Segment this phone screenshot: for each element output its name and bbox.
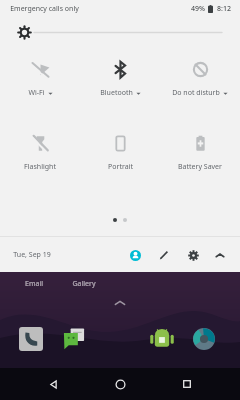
staticText: 49%	[191, 4, 205, 14]
button[interactable]: Phone	[19, 327, 43, 351]
button[interactable]: Collapse	[211, 246, 229, 264]
staticText: Flashlight	[24, 162, 56, 172]
button[interactable]: Do not disturb	[160, 60, 240, 98]
button[interactable]: Flashlight	[0, 134, 80, 172]
staticText: Battery Saver	[178, 162, 222, 172]
button[interactable]: Back	[39, 370, 67, 398]
button[interactable]: Battery Saver	[160, 134, 240, 172]
button[interactable]: Wi-Fi	[0, 60, 80, 98]
button[interactable]: Bluetooth	[80, 60, 160, 98]
button[interactable]: Play Store	[150, 327, 174, 351]
staticText: Wi-Fi	[28, 88, 45, 98]
staticText: Emergency calls only	[10, 4, 79, 14]
button[interactable]: Recents	[173, 370, 201, 398]
button[interactable]: Portrait	[80, 134, 160, 172]
staticText: 8:12	[217, 4, 231, 14]
button[interactable]: User	[126, 246, 144, 264]
staticText: Do not disturb	[172, 88, 220, 98]
staticText: Gallery	[72, 279, 96, 289]
button[interactable]: Home	[106, 370, 134, 398]
button[interactable]: Camera	[192, 327, 216, 351]
staticText: Tue, Sep 19	[13, 250, 51, 260]
button[interactable]: Edit	[155, 246, 173, 264]
button[interactable]: Messaging	[62, 327, 86, 351]
staticText: Email	[25, 279, 43, 289]
staticText: Portrait	[108, 162, 133, 172]
button[interactable]: Settings	[184, 246, 202, 264]
staticText: Bluetooth	[100, 88, 133, 98]
